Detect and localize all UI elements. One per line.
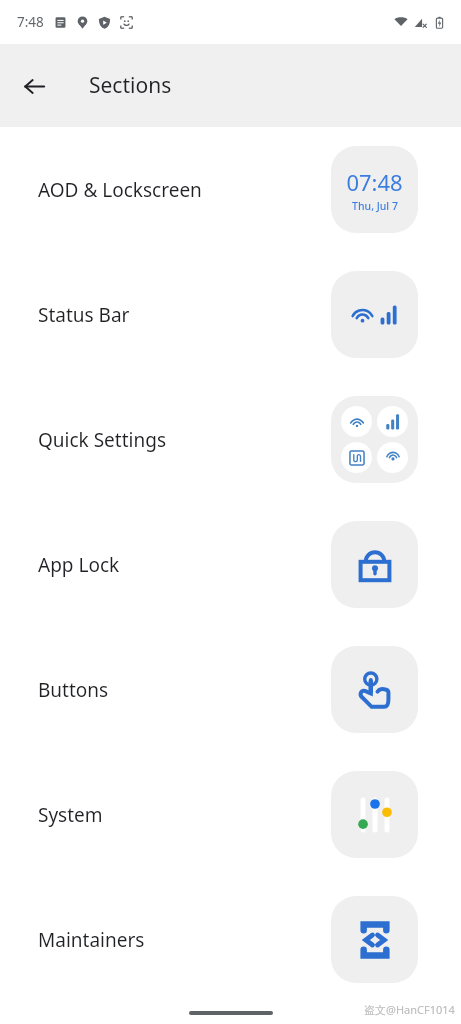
staticText: System xyxy=(38,802,103,828)
staticText: Thu, Jul 7 xyxy=(352,199,398,213)
staticText: 07:48 xyxy=(346,167,403,197)
staticText: 盗文@HanCF1014 xyxy=(364,1002,455,1017)
button[interactable]: Quick Settings xyxy=(0,377,461,502)
button[interactable]: Buttons xyxy=(0,627,461,752)
staticText: Maintainers xyxy=(38,927,145,953)
button[interactable]: App Lock xyxy=(0,502,461,627)
staticText: 7:48 xyxy=(17,13,44,31)
staticText: Quick Settings xyxy=(38,427,166,453)
staticText: Status Bar xyxy=(38,302,130,328)
button[interactable]: Back xyxy=(10,62,58,110)
button[interactable]: System xyxy=(0,752,461,877)
staticText: Sections xyxy=(89,71,172,100)
button[interactable]: Maintainers xyxy=(0,877,461,1002)
button[interactable]: Status Bar xyxy=(0,252,461,377)
staticText: AOD & Lockscreen xyxy=(38,177,202,203)
staticText: App Lock xyxy=(38,552,120,578)
button[interactable]: AOD & Lockscreen xyxy=(0,127,461,252)
staticText: Buttons xyxy=(38,677,109,703)
